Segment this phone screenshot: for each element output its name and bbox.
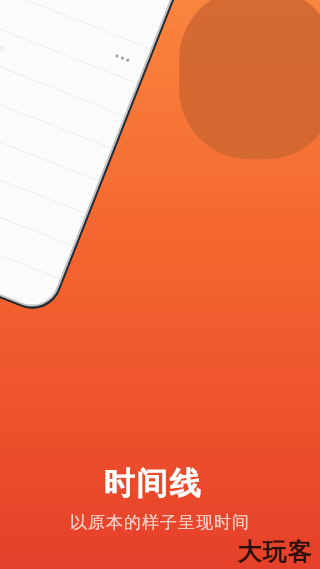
staticText: 大玩客 [237,537,312,567]
staticText: 以原本的样子呈现时间 [0,512,320,533]
button[interactable] [0,0,137,115]
button[interactable] [0,157,73,278]
button[interactable] [0,27,124,148]
button[interactable] [0,92,98,213]
button[interactable]: More options [109,45,136,70]
staticText: 时间线 [0,464,306,503]
button[interactable] [0,125,86,246]
button[interactable] [0,59,111,181]
button[interactable]: 黄小姐生日快乐 ∞ [0,0,173,21]
